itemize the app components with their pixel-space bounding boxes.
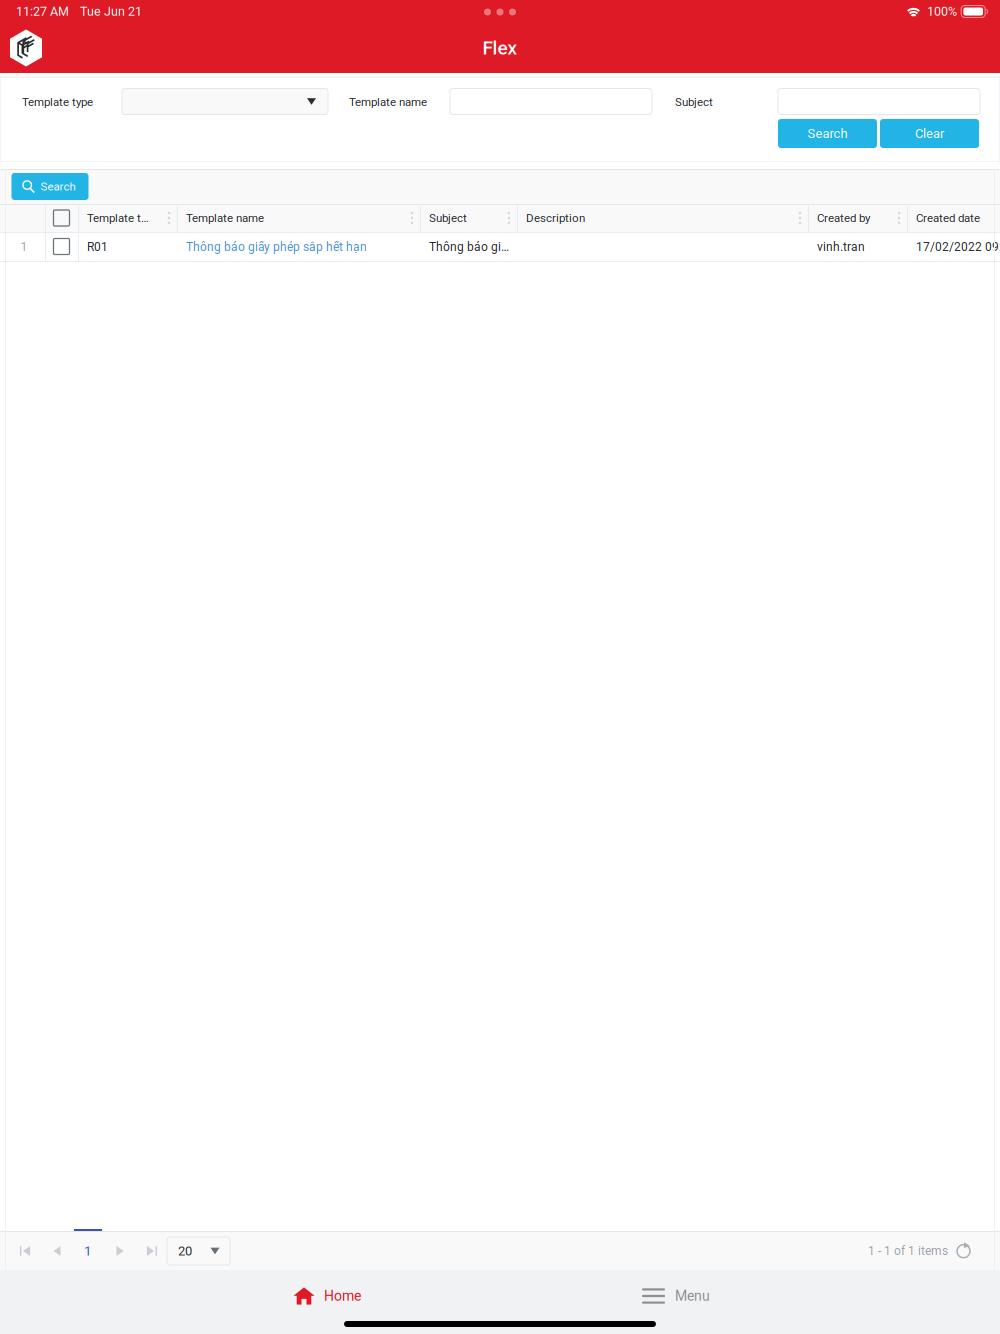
staticText: Thông báo giấy phép sắp hết hạn (186, 240, 367, 254)
button[interactable]: Page 1 (73, 1233, 103, 1269)
staticText: Description (526, 211, 585, 225)
staticText: Tue Jun 21 (80, 4, 142, 19)
button[interactable]: Template name field (450, 88, 652, 114)
button[interactable]: Subject field (778, 88, 980, 114)
button[interactable]: Page size 20 (167, 1237, 230, 1265)
button[interactable]: Menu (531, 1273, 821, 1319)
button[interactable]: Home (182, 1273, 472, 1319)
staticText: Template name (186, 211, 264, 225)
staticText: Template name (349, 95, 427, 109)
button[interactable]: Search (11, 173, 88, 200)
button[interactable]: Refresh (955, 1242, 973, 1260)
button[interactable]: Previous page (43, 1238, 71, 1264)
staticText: 11:27 AM (16, 4, 69, 19)
staticText: Search (807, 126, 847, 141)
staticText: Clear (915, 126, 944, 141)
staticText: 1 (84, 1243, 92, 1259)
staticText: Created by (817, 211, 870, 225)
staticText: Flex (482, 37, 517, 59)
button[interactable]: Template type (122, 88, 328, 114)
staticText: Subject (429, 211, 467, 225)
staticText: 1 (20, 240, 27, 254)
button[interactable]: First page (11, 1238, 39, 1264)
staticText: Subject (675, 95, 713, 109)
staticText: Search (40, 180, 75, 193)
button[interactable]: Clear (880, 119, 979, 148)
staticText: Template t… (87, 211, 149, 225)
staticText: Menu (675, 1288, 710, 1304)
staticText: 20 (178, 1243, 192, 1259)
staticText: Created date (916, 211, 980, 225)
button[interactable]: Search (778, 119, 877, 148)
staticText: Home (324, 1288, 361, 1304)
staticText: Template type (22, 95, 93, 109)
staticText: 1 - 1 of 1 items (868, 1244, 948, 1258)
staticText: 17/02/2022 09: (916, 240, 1000, 254)
staticText: 100% (927, 4, 957, 19)
button[interactable]: Select row (53, 210, 69, 226)
staticText: R01 (87, 240, 108, 254)
button[interactable]: Next page (106, 1238, 134, 1264)
button[interactable]: Last page (138, 1238, 166, 1264)
button[interactable]: Flex (7, 30, 44, 66)
button[interactable]: Select row (53, 238, 69, 254)
staticText: vinh.tran (817, 240, 865, 254)
staticText: Thông báo gi… (429, 240, 509, 254)
